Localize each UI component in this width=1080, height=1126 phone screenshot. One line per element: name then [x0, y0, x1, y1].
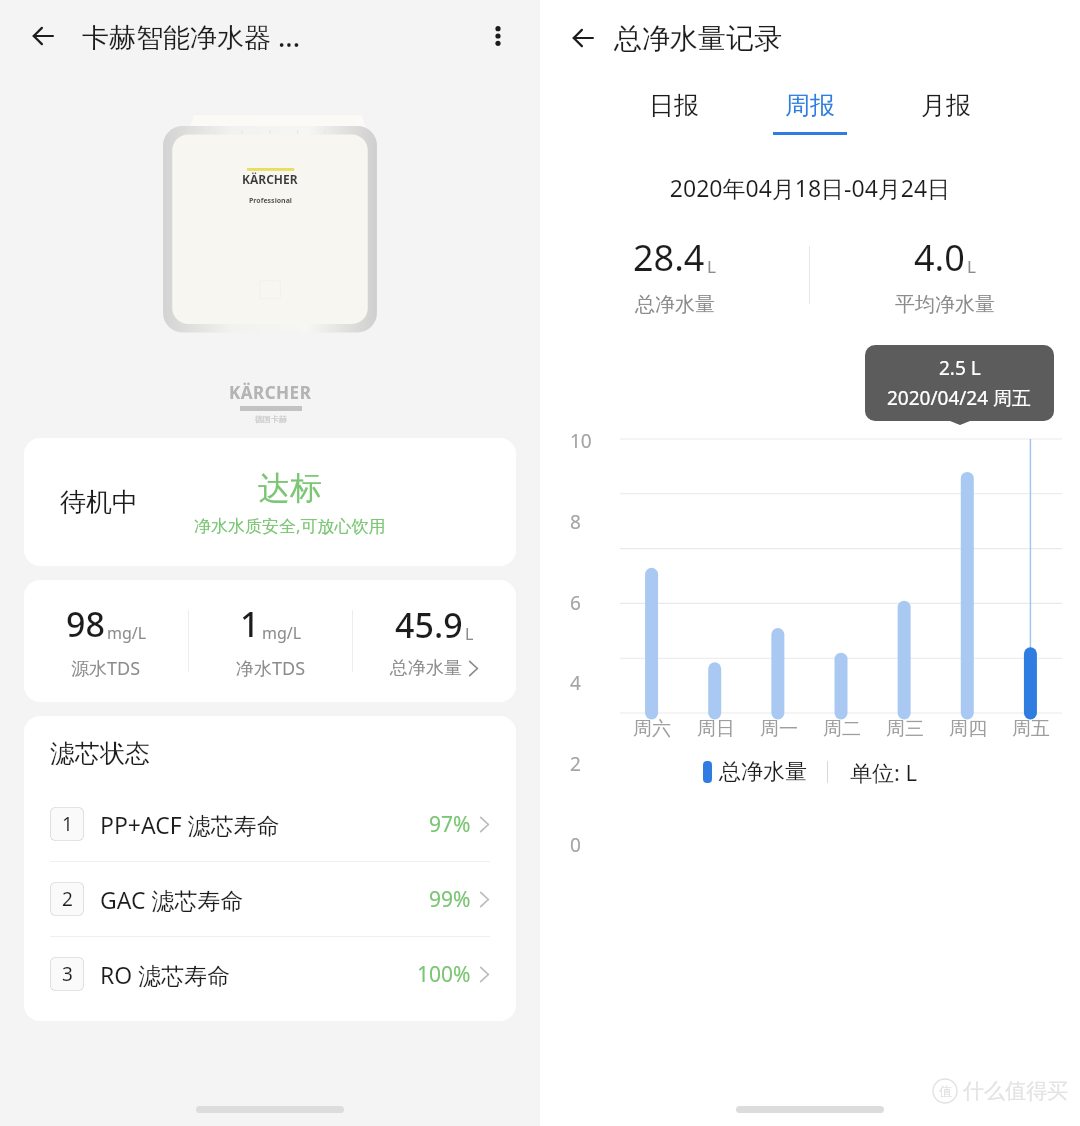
button[interactable]: 45.9 — [353, 580, 516, 702]
staticText: 2020/04/24 周五 — [887, 385, 1032, 411]
staticText: 净水水质安全,可放心饮用 — [194, 514, 386, 537]
staticText: 1 — [240, 601, 260, 647]
button[interactable]: 1 — [189, 580, 352, 702]
staticText: 2.5 L — [939, 355, 981, 381]
staticText: GAC 滤芯寿命 — [100, 884, 244, 915]
staticText: 28.4 — [633, 233, 705, 282]
staticText: 德国卡赫 — [255, 414, 287, 424]
staticText: 达标 — [258, 468, 322, 508]
staticText: 卡赫智能净水器 ... — [82, 18, 301, 55]
staticText: 6 — [570, 590, 581, 616]
staticText: 45.9 — [395, 602, 463, 648]
staticText: 总净水量 — [390, 657, 462, 680]
staticText: 4.0 — [914, 233, 965, 282]
button[interactable]: More options — [470, 8, 526, 64]
staticText: 净水TDS — [236, 656, 306, 681]
staticText: 1 — [62, 811, 73, 837]
staticText: 10 — [570, 428, 592, 454]
staticText: 周五 — [1012, 717, 1050, 741]
button[interactable]: 3 — [50, 937, 490, 1011]
button[interactable]: 2 — [50, 862, 490, 936]
staticText: 周二 — [823, 717, 861, 741]
staticText: 单位: L — [850, 757, 918, 787]
staticText: 97% — [429, 810, 471, 839]
staticText: 什么值得买 — [963, 1078, 1068, 1104]
staticText: 总净水量记录 — [614, 21, 782, 56]
staticText: KÄRCHER — [229, 381, 312, 404]
button[interactable]: 1 — [50, 787, 490, 861]
button[interactable]: 待机中 — [24, 438, 516, 566]
staticText: 值 — [939, 1083, 952, 1099]
staticText: 98 — [66, 601, 105, 647]
staticText: mg/L — [107, 622, 147, 644]
staticText: KÄRCHER — [242, 171, 298, 187]
button[interactable]: 周报 — [761, 90, 859, 135]
staticText: L — [967, 255, 976, 278]
staticText: 99% — [429, 885, 471, 914]
staticText: L — [707, 255, 716, 278]
staticText: 0 — [570, 832, 581, 858]
staticText: mg/L — [262, 622, 302, 644]
staticText: PP+ACF 滤芯寿命 — [100, 809, 280, 840]
staticText: 2 — [62, 886, 73, 912]
staticText: 周三 — [886, 717, 924, 741]
button[interactable]: 月报 — [897, 90, 995, 135]
button[interactable]: 98 — [24, 580, 188, 702]
staticText: 3 — [62, 961, 73, 987]
staticText: 平均净水量 — [895, 292, 995, 317]
staticText: RO 滤芯寿命 — [100, 959, 231, 990]
staticText: 周日 — [697, 717, 735, 741]
staticText: 总净水量 — [719, 758, 807, 786]
staticText: 源水TDS — [71, 656, 141, 681]
staticText: 周四 — [949, 717, 987, 741]
staticText: 待机中 — [60, 486, 138, 519]
staticText: Professional — [249, 196, 292, 206]
staticText: 月报 — [921, 90, 971, 121]
staticText: 2 — [570, 751, 581, 777]
staticText: 周一 — [760, 717, 798, 741]
button[interactable]: 日报 — [625, 90, 723, 135]
staticText: 100% — [417, 960, 471, 989]
staticText: 4 — [570, 670, 581, 696]
staticText: 日报 — [649, 90, 699, 121]
button[interactable]: Back — [554, 9, 612, 67]
staticText: 总净水量 — [635, 292, 715, 317]
staticText: 周六 — [633, 717, 671, 741]
staticText: L — [465, 623, 474, 645]
staticText: 周报 — [785, 90, 835, 121]
button[interactable]: Back — [14, 7, 72, 65]
staticText: 滤芯状态 — [50, 738, 150, 769]
staticText: 2020年04月18日-04月24日 — [540, 172, 1080, 203]
staticText: 8 — [570, 509, 581, 535]
